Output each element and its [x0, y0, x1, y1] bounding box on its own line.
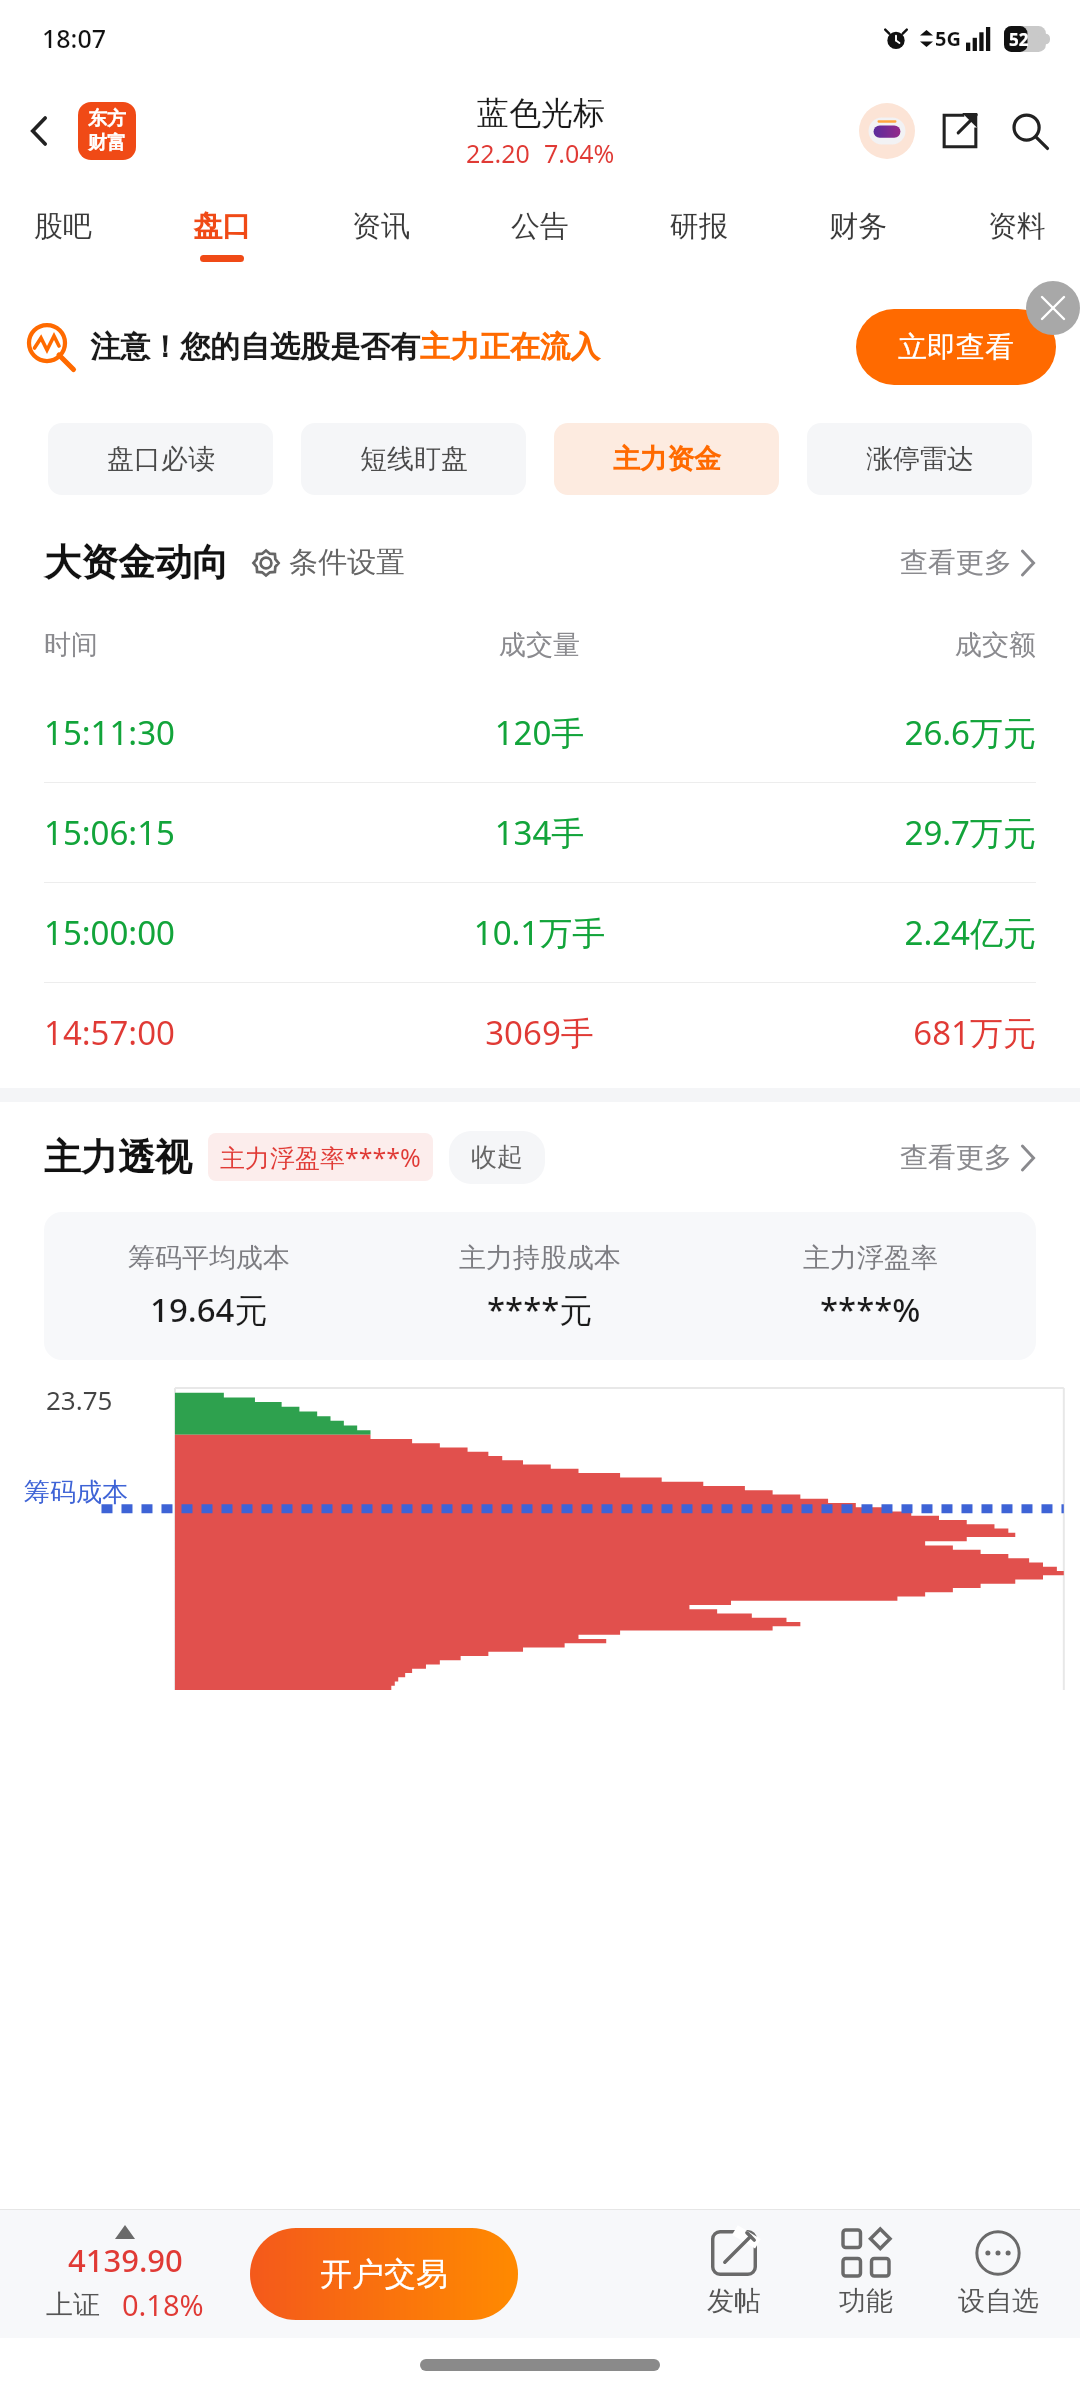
button[interactable]: 条件设置 [251, 544, 405, 581]
button[interactable]: 查看更多 [900, 545, 1036, 580]
staticText: 主力浮盈率 [803, 1241, 938, 1275]
button[interactable]: 收起 [471, 1141, 523, 1174]
button[interactable]: 15:06:15 [0, 783, 1080, 883]
staticText: 成交量 [374, 628, 705, 662]
button[interactable]: 盘口必读 [48, 423, 273, 495]
staticText: 筹码成本 [24, 1476, 128, 1509]
button[interactable]: Back [14, 105, 66, 157]
staticText: 26.6万元 [705, 710, 1036, 755]
button[interactable]: 功能 [800, 2230, 932, 2318]
button[interactable]: East Money [78, 102, 136, 160]
button[interactable]: 资料 [988, 186, 1046, 281]
staticText: 设自选 [958, 2284, 1039, 2318]
button[interactable]: 立即查看 [856, 309, 1056, 385]
staticText: 查看更多 [900, 545, 1012, 580]
staticText: 发帖 [707, 2284, 761, 2318]
staticText: 时间 [44, 628, 374, 662]
staticText: 15:11:30 [44, 710, 374, 755]
staticText: 东方 [88, 107, 126, 131]
staticText: 盘口 [193, 208, 251, 245]
staticText: 120手 [374, 710, 705, 755]
staticText: 23.75 [46, 1382, 113, 1417]
staticText: 14:57:00 [44, 1010, 374, 1055]
button[interactable]: 4139.90 [0, 2225, 250, 2324]
button[interactable]: 主力资金 [554, 423, 779, 495]
staticText: 22.20 [466, 136, 530, 170]
staticText: 15:00:00 [44, 910, 374, 955]
button[interactable]: 盘口 [193, 186, 251, 281]
staticText: 0.18% [122, 2285, 204, 2324]
staticText: 10.1万手 [374, 910, 705, 955]
button[interactable]: 发帖 [668, 2230, 800, 2318]
button[interactable]: Search [1002, 103, 1058, 159]
staticText: 立即查看 [898, 329, 1014, 366]
staticText: 财务 [829, 208, 887, 245]
button[interactable]: AI assistant [856, 100, 918, 162]
button[interactable]: 主力浮盈率****% [220, 1140, 421, 1174]
staticText: 主力透视 [44, 1134, 192, 1181]
staticText: 主力资金 [613, 442, 721, 476]
button[interactable]: 财务 [829, 186, 887, 281]
button[interactable]: Close [1026, 281, 1080, 335]
staticText: 上证 [46, 2288, 100, 2322]
staticText: ****元 [487, 1287, 593, 1332]
staticText: 功能 [839, 2284, 893, 2318]
button[interactable]: 资讯 [352, 186, 410, 281]
staticText: 5G [935, 25, 961, 52]
staticText: 股吧 [34, 208, 92, 245]
staticText: 681万元 [705, 1010, 1036, 1055]
staticText: 主力浮盈率****% [220, 1140, 421, 1174]
staticText: 盘口必读 [107, 442, 215, 476]
button[interactable]: 股吧 [34, 186, 92, 281]
staticText: 大资金动向 [44, 539, 229, 586]
staticText: 18:07 [42, 21, 107, 55]
button[interactable]: 查看更多 [900, 1140, 1036, 1175]
button[interactable]: 设自选 [932, 2230, 1064, 2318]
staticText: 公告 [511, 208, 569, 245]
staticText: 收起 [471, 1141, 523, 1174]
staticText: 条件设置 [289, 544, 405, 581]
staticText: 52 [1009, 28, 1029, 51]
staticText: 研报 [670, 208, 728, 245]
staticText: 蓝色光标 [477, 93, 605, 133]
button[interactable]: 15:00:00 [0, 883, 1080, 983]
staticText: 筹码平均成本 [128, 1241, 290, 1275]
button[interactable]: 15:11:30 [0, 683, 1080, 783]
staticText: 查看更多 [900, 1140, 1012, 1175]
button[interactable]: 公告 [511, 186, 569, 281]
staticText: 主力正在流入 [420, 328, 600, 366]
staticText: 资料 [988, 208, 1046, 245]
staticText: 成交额 [705, 628, 1036, 662]
staticText: 19.64元 [150, 1287, 268, 1332]
button[interactable]: 研报 [670, 186, 728, 281]
staticText: 15:06:15 [44, 810, 374, 855]
staticText: 短线盯盘 [360, 442, 468, 476]
staticText: 3069手 [374, 1010, 705, 1055]
button[interactable]: 14:57:00 [0, 983, 1080, 1082]
staticText: 134手 [374, 810, 705, 855]
staticText: 29.7万元 [705, 810, 1036, 855]
staticText: 4139.90 [68, 2239, 183, 2281]
staticText: ****% [820, 1287, 921, 1332]
staticText: 7.04% [544, 136, 615, 170]
staticText: 2.24亿元 [705, 910, 1036, 955]
staticText: 开户交易 [320, 2254, 448, 2294]
staticText: 主力持股成本 [459, 1241, 621, 1275]
button[interactable]: 开户交易 [250, 2228, 518, 2320]
button[interactable]: Share [932, 103, 988, 159]
staticText: 涨停雷达 [866, 442, 974, 476]
staticText: 注意！您的自选股是否有 [90, 328, 420, 366]
staticText: 财富 [88, 131, 126, 155]
button[interactable]: 短线盯盘 [301, 423, 526, 495]
button[interactable]: 筹码平均成本 [44, 1212, 1036, 1360]
button[interactable]: 涨停雷达 [807, 423, 1032, 495]
staticText: 资讯 [352, 208, 410, 245]
